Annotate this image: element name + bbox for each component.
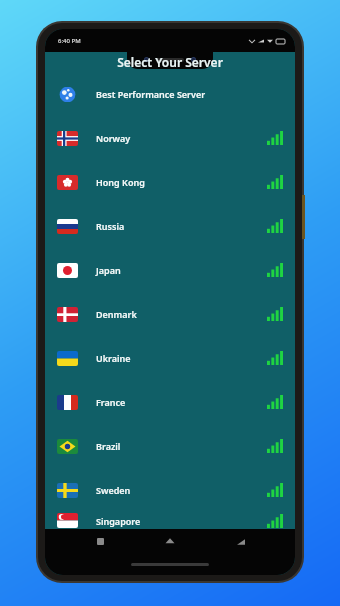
staticText: Norway [96, 132, 131, 144]
button[interactable]: Brazil [45, 424, 295, 468]
staticText: Denmark [96, 308, 137, 320]
staticText: Brazil [96, 440, 121, 452]
button[interactable]: Sweden [45, 468, 295, 512]
button[interactable]: France [45, 380, 295, 424]
button[interactable]: Home [155, 529, 185, 553]
staticText: Select Your Server [117, 54, 223, 70]
staticText: Sweden [96, 484, 131, 496]
staticText: 6:40 PM [58, 37, 81, 45]
staticText: Hong Kong [96, 176, 145, 188]
button[interactable]: Recents [85, 529, 115, 553]
staticText: France [96, 396, 126, 408]
staticText: Ukraine [96, 352, 131, 364]
button[interactable]: Back [225, 529, 255, 553]
button[interactable]: Russia [45, 204, 295, 248]
staticText: Russia [96, 220, 125, 232]
button[interactable]: Hong Kong [45, 160, 295, 204]
staticText: Best Performance Server [96, 88, 206, 100]
button[interactable]: Denmark [45, 292, 295, 336]
button[interactable]: Norway [45, 116, 295, 160]
button[interactable]: Singapore [45, 512, 295, 529]
staticText: Singapore [96, 515, 141, 527]
button[interactable]: Best Performance Server [45, 72, 295, 116]
staticText: Japan [96, 264, 121, 276]
button[interactable]: Japan [45, 248, 295, 292]
button[interactable]: Ukraine [45, 336, 295, 380]
